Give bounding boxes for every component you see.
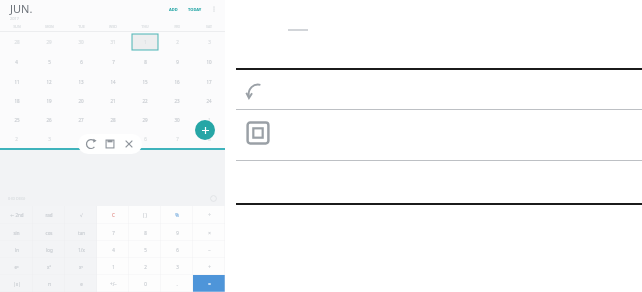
button[interactable]: Undo bbox=[236, 70, 642, 108]
staticText: 5 bbox=[144, 247, 147, 253]
button[interactable]: 8 bbox=[193, 129, 225, 148]
button[interactable]: 5 bbox=[129, 241, 161, 258]
button[interactable]: 21 bbox=[97, 91, 129, 110]
button[interactable]: Stop bbox=[236, 110, 642, 156]
button[interactable]: 16 bbox=[161, 72, 193, 91]
button[interactable]: ( ) bbox=[129, 206, 161, 224]
button[interactable]: tan bbox=[65, 224, 97, 241]
button[interactable]: 1/x bbox=[65, 241, 97, 258]
button[interactable]: 2 bbox=[129, 258, 161, 275]
button[interactable]: |x| bbox=[0, 275, 33, 292]
button[interactable]: 28 bbox=[97, 110, 129, 129]
button[interactable]: × bbox=[193, 224, 225, 241]
button[interactable]: ← 2nd bbox=[0, 206, 33, 224]
button[interactable]: x² bbox=[33, 258, 65, 275]
button[interactable]: TODAY bbox=[186, 7, 204, 12]
button[interactable]: 29 bbox=[129, 110, 161, 129]
button[interactable]: 1 bbox=[97, 258, 129, 275]
button[interactable]: 17 bbox=[193, 72, 225, 91]
button[interactable]: 7 bbox=[97, 224, 129, 241]
button[interactable]: ln bbox=[0, 241, 33, 258]
button[interactable]: cos bbox=[33, 224, 65, 241]
button[interactable]: Close bbox=[122, 137, 136, 151]
staticText: 28 bbox=[110, 117, 116, 123]
button[interactable]: 8 bbox=[129, 224, 161, 241]
staticText: 6 bbox=[176, 247, 179, 253]
button[interactable]: log bbox=[33, 241, 65, 258]
button[interactable]: +/− bbox=[97, 275, 129, 292]
staticText: x² bbox=[47, 264, 51, 270]
button[interactable]: eˣ bbox=[0, 258, 33, 275]
button[interactable]: π bbox=[33, 275, 65, 292]
staticText: 7 bbox=[112, 59, 115, 65]
button[interactable]: 15 bbox=[129, 72, 161, 91]
button[interactable]: 24 bbox=[193, 91, 225, 110]
button[interactable]: 11 bbox=[0, 72, 33, 91]
button[interactable]: 10 bbox=[193, 52, 225, 72]
button[interactable]: 9 bbox=[161, 224, 193, 241]
button[interactable]: 30 bbox=[65, 32, 97, 52]
button[interactable]: 5 bbox=[33, 52, 65, 72]
button[interactable]: 4 bbox=[65, 129, 97, 148]
button[interactable]: % bbox=[161, 206, 193, 224]
staticText: 18 bbox=[14, 98, 20, 104]
button[interactable]: 28 bbox=[0, 32, 33, 52]
button[interactable]: More options bbox=[209, 4, 219, 14]
button[interactable]: 1 bbox=[129, 32, 161, 52]
button[interactable]: 30 bbox=[161, 110, 193, 129]
staticText: 13 bbox=[78, 79, 84, 85]
button[interactable]: Refresh bbox=[84, 137, 98, 151]
button[interactable]: 4 bbox=[0, 52, 33, 72]
staticText: 1 bbox=[208, 117, 211, 123]
button[interactable]: 27 bbox=[65, 110, 97, 129]
button[interactable]: Backspace bbox=[210, 195, 217, 202]
staticText: 31 bbox=[110, 39, 116, 45]
button[interactable]: 19 bbox=[33, 91, 65, 110]
button[interactable]: 8 bbox=[129, 52, 161, 72]
button[interactable]: 4 bbox=[97, 241, 129, 258]
button[interactable]: 6 bbox=[65, 52, 97, 72]
button[interactable]: 13 bbox=[65, 72, 97, 91]
button[interactable]: 1 bbox=[193, 110, 225, 129]
button[interactable]: sin bbox=[0, 224, 33, 241]
button[interactable]: 0 bbox=[129, 275, 161, 292]
button[interactable]: ADD bbox=[167, 7, 180, 12]
button[interactable]: 6 bbox=[129, 129, 161, 148]
staticText: 29 bbox=[46, 39, 52, 45]
button[interactable]: 9 bbox=[161, 52, 193, 72]
button[interactable]: 18 bbox=[0, 91, 33, 110]
button[interactable]: 14 bbox=[97, 72, 129, 91]
button[interactable]: rad bbox=[33, 206, 65, 224]
button[interactable]: xʸ bbox=[65, 258, 97, 275]
button[interactable]: Save bbox=[103, 137, 117, 151]
button[interactable]: 22 bbox=[129, 91, 161, 110]
staticText: 2 bbox=[176, 39, 179, 45]
button[interactable]: 23 bbox=[161, 91, 193, 110]
button[interactable]: 20 bbox=[65, 91, 97, 110]
button[interactable]: 3 bbox=[161, 258, 193, 275]
button[interactable]: 5 bbox=[97, 129, 129, 148]
button[interactable]: 25 bbox=[0, 110, 33, 129]
staticText: ÷ bbox=[208, 212, 211, 218]
button[interactable]: 26 bbox=[33, 110, 65, 129]
button[interactable]: 12 bbox=[33, 72, 65, 91]
button[interactable]: 6 bbox=[161, 241, 193, 258]
button[interactable]: C bbox=[97, 206, 129, 224]
button[interactable]: Add event bbox=[195, 120, 215, 140]
button[interactable]: = bbox=[193, 275, 225, 292]
button[interactable]: 29 bbox=[33, 32, 65, 52]
